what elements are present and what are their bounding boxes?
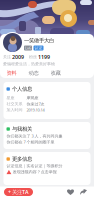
staticText: 关注 xyxy=(3,54,11,59)
staticText: 社交关系 xyxy=(6,101,22,106)
staticText: Lv6 xyxy=(25,45,31,51)
staticText: 2009 xyxy=(12,53,24,61)
button[interactable]: Like xyxy=(64,186,77,197)
button[interactable]: 动态 xyxy=(24,69,43,77)
staticText: 收藏 xyxy=(50,70,60,76)
staticText: 星座 xyxy=(6,95,14,100)
staticText: + 关注TA xyxy=(8,188,29,196)
staticText: 认证 xyxy=(34,45,42,50)
staticText: 发现违规内容？点击举报 xyxy=(13,169,57,174)
staticText: 资料 xyxy=(6,70,16,76)
button[interactable]: Share xyxy=(77,186,90,197)
staticText: 粉丝 xyxy=(29,54,37,59)
button[interactable]: Profile photo xyxy=(2,32,23,53)
staticText: 2019-10-14 xyxy=(26,107,44,113)
button[interactable]: 资料 xyxy=(2,69,21,77)
staticText: 爱编程爱生活，热爱美好事物 xyxy=(3,61,55,66)
button[interactable]: + 关注TA xyxy=(4,188,33,196)
staticText: 1199 xyxy=(38,53,50,61)
button[interactable]: 关注 xyxy=(3,54,24,60)
staticText: 动态 xyxy=(28,70,38,76)
staticText: 一笑做手大白 xyxy=(24,37,54,44)
staticText: 你来过7次 xyxy=(26,101,44,107)
staticText: 摩羯座 xyxy=(26,95,38,100)
staticText: 更多信息 xyxy=(12,156,32,162)
staticText: 你们都在 7 个相同的圈子里 xyxy=(6,139,54,145)
button[interactable]: 粉丝 xyxy=(29,54,50,60)
staticText: 你们都关注了 3 人，有共同兴趣 xyxy=(6,133,62,139)
staticText: 个人信息 xyxy=(12,86,32,92)
staticText: 加入时间 xyxy=(6,107,22,112)
staticText: 与我相关 xyxy=(12,126,32,132)
staticText: 认证信息｜实名认证｜等级积分 xyxy=(6,163,62,168)
button[interactable]: 收藏 xyxy=(46,69,65,77)
